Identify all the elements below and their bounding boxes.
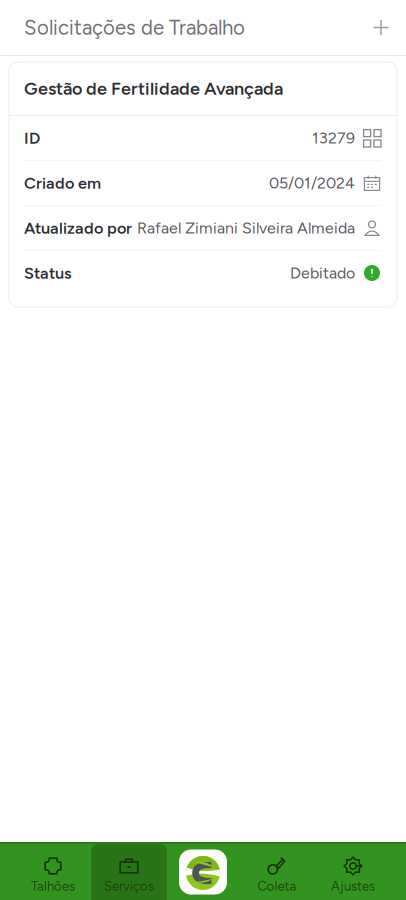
- button[interactable]: Serviços: [91, 844, 167, 900]
- button[interactable]: Adicionar: [362, 8, 400, 46]
- button[interactable]: Talhões: [15, 844, 91, 900]
- staticText: Serviços: [104, 878, 154, 894]
- staticText: Gestão de Fertilidade Avançada: [24, 78, 283, 99]
- staticText: Status: [24, 263, 72, 283]
- button[interactable]: Ajustes: [315, 844, 391, 900]
- staticText: Atualizado por: [24, 218, 132, 238]
- staticText: Solicitações de Trabalho: [24, 15, 245, 40]
- staticText: Rafael Zimiani Silveira Almeida: [137, 218, 355, 237]
- staticText: Ajustes: [331, 878, 375, 894]
- button[interactable]: Início: [167, 844, 239, 900]
- staticText: ID: [24, 128, 40, 148]
- staticText: 13279: [312, 128, 355, 147]
- staticText: 05/01/2024: [269, 173, 355, 192]
- button[interactable]: Coleta: [239, 844, 315, 900]
- staticText: Coleta: [257, 878, 296, 894]
- staticText: Criado em: [24, 173, 101, 193]
- staticText: Talhões: [31, 878, 75, 894]
- staticText: Debitado: [290, 263, 355, 282]
